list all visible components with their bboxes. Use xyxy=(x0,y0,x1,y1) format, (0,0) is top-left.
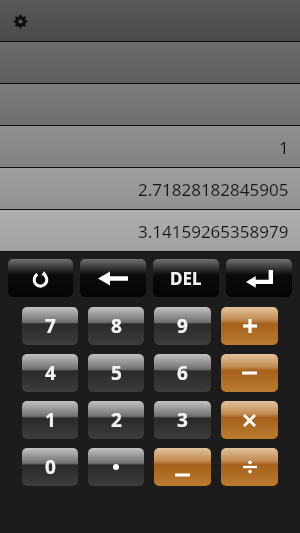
staticText: 7 xyxy=(45,313,56,339)
button[interactable] xyxy=(0,84,300,126)
button[interactable]: 1 xyxy=(22,401,78,439)
staticText: 1 xyxy=(279,136,289,159)
button[interactable]: Multiply xyxy=(221,401,278,439)
button[interactable]: 2.71828182845905 xyxy=(0,168,300,210)
staticText: 2.71828182845905 xyxy=(138,178,289,201)
button[interactable]: 0 xyxy=(22,448,78,486)
staticText: DEL xyxy=(170,267,202,290)
button[interactable]: Underscore xyxy=(154,448,211,486)
button[interactable]: Plus xyxy=(221,307,278,345)
staticText: 1 xyxy=(45,407,56,433)
button[interactable]: 5 xyxy=(88,354,144,392)
button[interactable]: 4 xyxy=(22,354,78,392)
staticText: 2 xyxy=(111,407,122,433)
button[interactable]: Settings xyxy=(7,8,33,34)
button[interactable]: Settings xyxy=(0,0,300,42)
button[interactable]: Backspace xyxy=(80,259,146,297)
staticText: 9 xyxy=(177,313,188,339)
button[interactable] xyxy=(0,42,300,84)
button[interactable]: 3 xyxy=(154,401,211,439)
staticText: 5 xyxy=(111,360,122,386)
button[interactable]: 3.14159265358979 xyxy=(0,210,300,252)
button[interactable]: Reset xyxy=(8,259,73,297)
button[interactable]: 6 xyxy=(154,354,211,392)
button[interactable]: Enter xyxy=(226,259,292,297)
button[interactable]: 8 xyxy=(88,307,144,345)
button[interactable]: Decimal point xyxy=(88,448,144,486)
button[interactable]: 1 xyxy=(0,126,300,168)
button[interactable]: Minus xyxy=(221,354,278,392)
button[interactable]: 9 xyxy=(154,307,211,345)
staticText: 3.14159265358979 xyxy=(138,220,289,243)
staticText: 8 xyxy=(111,313,122,339)
staticText: 0 xyxy=(45,454,56,480)
staticText: 4 xyxy=(45,360,56,386)
staticText: 6 xyxy=(177,360,188,386)
button[interactable]: Divide xyxy=(221,448,278,486)
staticText: 3 xyxy=(177,407,188,433)
button[interactable]: 7 xyxy=(22,307,78,345)
button[interactable]: 2 xyxy=(88,401,144,439)
button[interactable]: DEL xyxy=(153,259,219,297)
